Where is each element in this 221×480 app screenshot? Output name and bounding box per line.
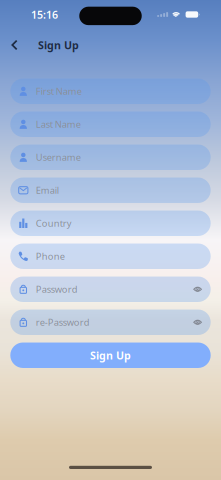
button[interactable]: Username: [10, 144, 211, 170]
staticText: First Name: [36, 85, 82, 97]
button[interactable]: Last Name: [10, 111, 211, 137]
staticText: Password: [36, 283, 78, 295]
staticText: re-Password: [36, 316, 90, 328]
staticText: Country: [36, 217, 72, 229]
staticText: Username: [36, 151, 81, 163]
staticText: Email: [36, 184, 59, 196]
staticText: Phone: [36, 250, 65, 262]
button[interactable]: Sign Up: [10, 342, 211, 368]
button[interactable]: Phone: [10, 243, 211, 269]
staticText: Last Name: [36, 118, 81, 130]
staticText: Sign Up: [38, 38, 79, 52]
button[interactable]: re-Password: [10, 309, 211, 335]
button[interactable]: First Name: [10, 78, 211, 104]
button[interactable]: Password: [10, 276, 211, 302]
button[interactable]: Email: [10, 177, 211, 203]
staticText: 15:16: [31, 7, 58, 22]
button[interactable]: Back: [5, 32, 24, 58]
staticText: Sign Up: [90, 348, 131, 362]
button[interactable]: Country: [10, 210, 211, 236]
